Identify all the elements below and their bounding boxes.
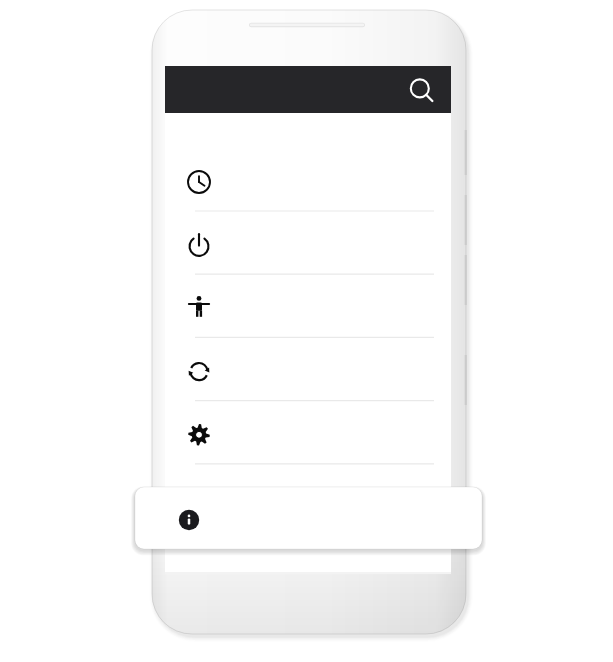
button[interactable]: Date & time: [165, 156, 451, 209]
button[interactable]: Accessibility: [165, 282, 451, 335]
button[interactable]: Information: [135, 487, 482, 549]
button[interactable]: Search: [400, 70, 442, 110]
button[interactable]: Settings: [165, 408, 451, 461]
button[interactable]: Power: [165, 219, 451, 272]
button[interactable]: Sync: [165, 345, 451, 398]
